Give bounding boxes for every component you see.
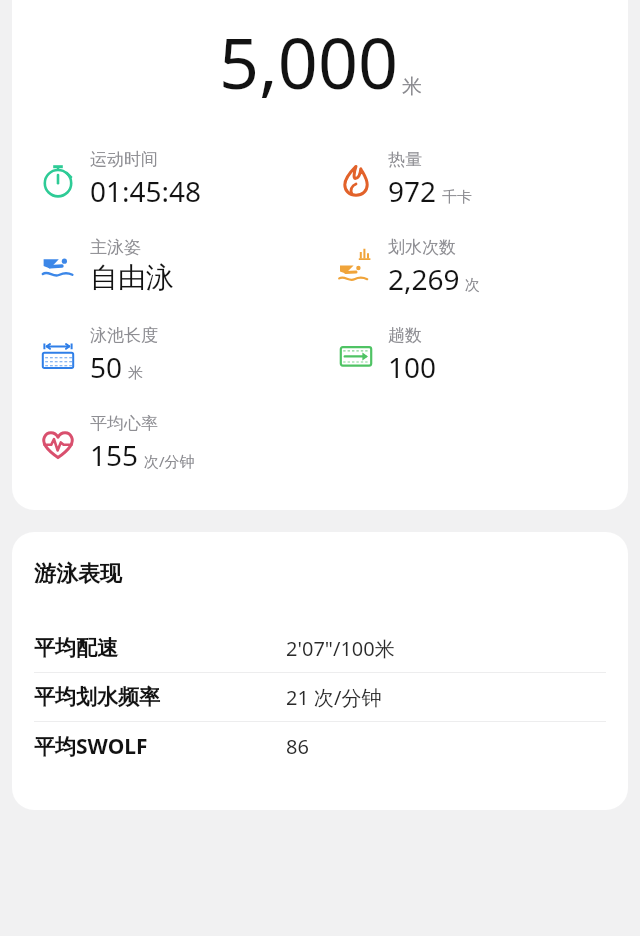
button[interactable]: 平均划水频率 xyxy=(12,673,628,721)
staticText: 主泳姿 xyxy=(90,237,141,258)
staticText: 热量 xyxy=(388,149,422,170)
staticText: 运动时间 xyxy=(90,149,158,170)
staticText: 平均配速 xyxy=(34,635,286,661)
button[interactable]: Pool length xyxy=(36,325,320,386)
staticText: 次/分钟 xyxy=(144,451,195,471)
other: Stroke type xyxy=(38,246,78,286)
staticText: 86 xyxy=(286,733,309,760)
other: Laps xyxy=(336,336,376,376)
staticText: 趟数 xyxy=(388,325,422,346)
button[interactable]: Duration xyxy=(36,149,320,210)
other: Average heart rate xyxy=(38,424,78,464)
other: Duration xyxy=(38,160,78,200)
staticText: 50 xyxy=(90,348,123,386)
staticText: 155 xyxy=(90,436,139,474)
button[interactable]: Stroke type xyxy=(36,237,320,295)
staticText: 01:45:48 xyxy=(90,172,202,210)
staticText: 21 次/分钟 xyxy=(286,684,382,711)
button[interactable]: Average heart rate xyxy=(36,413,320,474)
other: Stroke count xyxy=(336,248,376,288)
other: Pool length xyxy=(38,336,78,376)
staticText: 平均SWOLF xyxy=(34,732,286,761)
other: Calories xyxy=(336,160,376,200)
button[interactable]: 平均SWOLF xyxy=(12,722,628,770)
staticText: 平均心率 xyxy=(90,413,158,434)
staticText: 游泳表现 xyxy=(34,560,122,588)
staticText: 自由泳 xyxy=(90,260,174,295)
staticText: 2'07"/100米 xyxy=(286,635,395,662)
button[interactable]: Calories xyxy=(334,149,628,210)
staticText: 100 xyxy=(388,348,437,386)
staticText: 米 xyxy=(128,364,143,383)
staticText: 次 xyxy=(465,276,480,295)
button[interactable]: 平均配速 xyxy=(12,624,628,672)
staticText: 5,000 xyxy=(219,14,398,109)
button[interactable]: Laps xyxy=(334,325,628,386)
staticText: 平均划水频率 xyxy=(34,684,286,710)
staticText: 2,269 xyxy=(388,260,460,298)
staticText: 972 xyxy=(388,172,437,210)
staticText: 米 xyxy=(402,74,422,99)
staticText: 千卡 xyxy=(442,188,472,207)
button[interactable]: Stroke count xyxy=(334,237,628,298)
staticText: 泳池长度 xyxy=(90,325,158,346)
staticText: 划水次数 xyxy=(388,237,456,258)
